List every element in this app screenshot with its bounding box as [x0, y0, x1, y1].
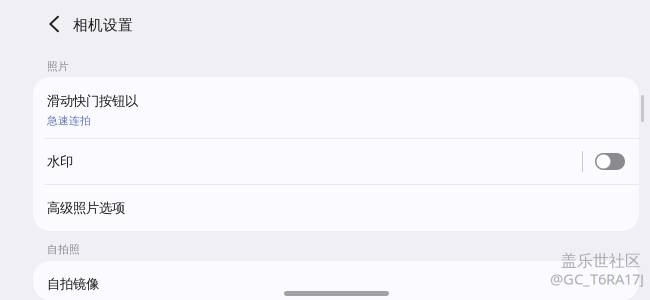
staticText: 自拍照 — [47, 243, 80, 256]
button[interactable]: 返回 — [39, 9, 69, 39]
button[interactable]: 高级照片选项 — [33, 185, 639, 231]
staticText: 高级照片选项 — [47, 200, 125, 216]
staticText: 自拍镜像 — [47, 276, 99, 292]
button[interactable]: 滑动快门按钮以 — [33, 77, 639, 138]
button[interactable]: 自拍镜像 — [33, 261, 639, 300]
staticText: 急速连拍 — [47, 114, 91, 127]
staticText: 滑动快门按钮以 — [47, 93, 138, 109]
staticText: 盖乐世社区 — [561, 251, 641, 271]
button[interactable]: 水印 — [33, 139, 639, 184]
staticText: 相机设置 — [73, 16, 133, 34]
staticText: @GC_T6RA17J — [550, 269, 644, 288]
staticText: 水印 — [47, 153, 73, 170]
staticText: 照片 — [47, 60, 69, 73]
